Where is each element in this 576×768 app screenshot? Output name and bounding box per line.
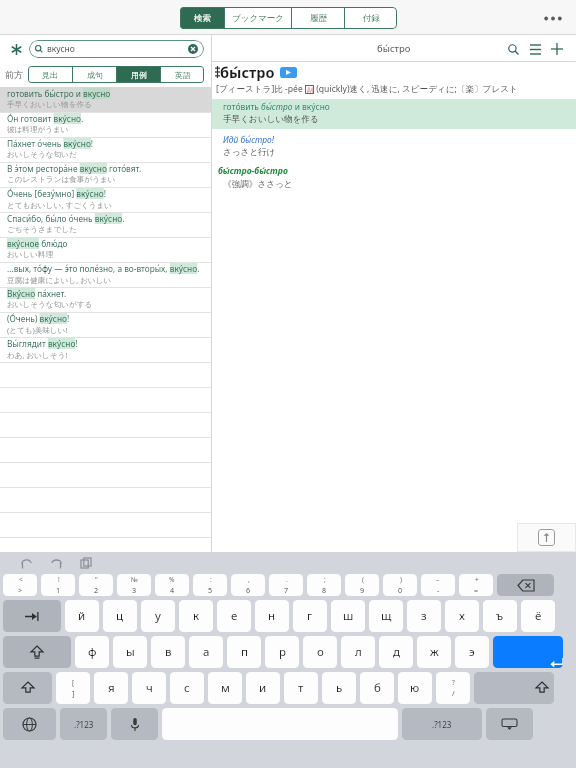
button[interactable]: Идй бы́стро! <box>223 134 576 158</box>
button[interactable]: Hide keyboard <box>486 708 533 740</box>
button[interactable]: ? <box>436 672 470 704</box>
button[interactable]: о <box>303 636 337 668</box>
button[interactable]: р <box>265 636 299 668</box>
button[interactable]: Language <box>3 708 56 740</box>
button[interactable]: Caps lock <box>3 636 71 668</box>
button[interactable]: Return <box>493 636 563 668</box>
button[interactable]: а <box>189 636 223 668</box>
button[interactable]: в <box>151 636 185 668</box>
button[interactable]: .?123 <box>60 708 107 740</box>
button[interactable]: ; <box>307 574 341 596</box>
button[interactable]: Search <box>502 38 524 60</box>
button[interactable]: ы <box>113 636 147 668</box>
button[interactable]: т <box>284 672 318 704</box>
button[interactable]: < <box>3 574 37 596</box>
button[interactable]: Вкýсно па́хнет. <box>0 287 211 312</box>
button[interactable]: 英語 <box>161 66 204 83</box>
button[interactable]: Dictionary select <box>6 39 26 59</box>
button[interactable]: Redo <box>44 552 68 574</box>
button[interactable]: 検索 <box>180 7 224 29</box>
button[interactable]: Menu <box>524 38 546 60</box>
staticText: № <box>131 575 138 584</box>
button[interactable]: ...вых, то́фу — э́то поле́зно, а во-втор… <box>0 262 211 287</box>
button[interactable]: х <box>445 600 479 632</box>
button[interactable]: 履歴 <box>292 7 344 29</box>
button[interactable]: Shift <box>474 672 554 704</box>
button[interactable]: у <box>141 600 175 632</box>
button[interactable]: бы́стро-бы́стро <box>218 165 576 190</box>
button[interactable]: – <box>421 574 455 596</box>
button[interactable]: Clear <box>186 42 200 56</box>
button[interactable]: ю <box>398 672 432 704</box>
staticText: т <box>298 680 304 696</box>
button[interactable]: + <box>459 574 493 596</box>
button[interactable]: ц <box>103 600 137 632</box>
button[interactable]: м <box>208 672 242 704</box>
button[interactable]: Па́хнет о́чень вкýсно! <box>0 137 211 162</box>
staticText: ! <box>58 575 60 584</box>
button[interactable]: " <box>79 574 113 596</box>
button[interactable]: й <box>65 600 99 632</box>
button[interactable]: Add <box>546 38 568 60</box>
staticText: – <box>436 575 440 584</box>
staticText: ] <box>72 688 75 698</box>
button[interactable]: : <box>193 574 227 596</box>
button[interactable]: [ <box>56 672 90 704</box>
button[interactable]: н <box>255 600 289 632</box>
button[interactable]: О́чень [безу́мно] вкýсно! <box>0 187 211 212</box>
button[interactable]: ъ <box>483 600 517 632</box>
button[interactable]: Dictate <box>111 708 158 740</box>
button[interactable]: готóвить бы́стро и вкýсно <box>212 99 576 129</box>
button[interactable]: к <box>179 600 213 632</box>
staticText: к <box>193 608 200 624</box>
button[interactable]: Спаси́бо, бы́ло о́чень вкýсно. <box>0 212 211 237</box>
button[interactable]: щ <box>369 600 403 632</box>
button[interactable]: Tab <box>3 600 61 632</box>
button[interactable]: . <box>269 574 303 596</box>
button[interactable]: Вы́глядит вкýсно! <box>0 337 211 362</box>
button[interactable]: л <box>341 636 375 668</box>
button[interactable]: 見出 <box>28 66 72 83</box>
button[interactable]: Play audio <box>280 67 297 78</box>
button[interactable]: , <box>231 574 265 596</box>
button[interactable]: вкýсное блю́до <box>0 237 211 262</box>
button[interactable]: п <box>227 636 261 668</box>
button[interactable]: готовить бы́стро и вкусно <box>0 87 211 112</box>
button[interactable]: и <box>246 672 280 704</box>
button[interactable]: ( <box>345 574 379 596</box>
button[interactable]: Share <box>538 529 555 546</box>
button[interactable]: ь <box>322 672 356 704</box>
button[interactable]: э <box>455 636 489 668</box>
button[interactable]: ж <box>417 636 451 668</box>
button[interactable]: В э́том рестора́не вкусно гото́вят. <box>0 162 211 187</box>
button[interactable]: ф <box>75 636 109 668</box>
button[interactable]: е <box>217 600 251 632</box>
button[interactable]: с <box>170 672 204 704</box>
button[interactable]: б <box>360 672 394 704</box>
button[interactable]: ч <box>132 672 166 704</box>
button[interactable]: More options <box>540 5 566 31</box>
button[interactable]: 付録 <box>345 7 397 29</box>
button[interactable]: вкусно <box>29 40 204 58</box>
button[interactable]: з <box>407 600 441 632</box>
button[interactable]: ё <box>521 600 555 632</box>
button[interactable]: ш <box>331 600 365 632</box>
button[interactable]: Shift <box>3 672 52 704</box>
button[interactable]: .?123 <box>402 708 482 740</box>
button[interactable]: 成句 <box>73 66 116 83</box>
button[interactable]: г <box>293 600 327 632</box>
button[interactable]: ! <box>41 574 75 596</box>
button[interactable]: Backspace <box>497 574 554 596</box>
button[interactable]: № <box>117 574 151 596</box>
button[interactable]: (О́чень) вкýсно! <box>0 312 211 337</box>
button[interactable]: ブックマーク <box>225 7 291 29</box>
button[interactable]: Undo <box>14 552 38 574</box>
button[interactable]: Paste <box>74 552 98 574</box>
button[interactable]: д <box>379 636 413 668</box>
button[interactable]: О́н готовит вкýсно. <box>0 112 211 137</box>
button[interactable]: я <box>94 672 128 704</box>
button[interactable]: ) <box>383 574 417 596</box>
button[interactable]: % <box>155 574 189 596</box>
button[interactable]: 用例 <box>117 66 160 83</box>
